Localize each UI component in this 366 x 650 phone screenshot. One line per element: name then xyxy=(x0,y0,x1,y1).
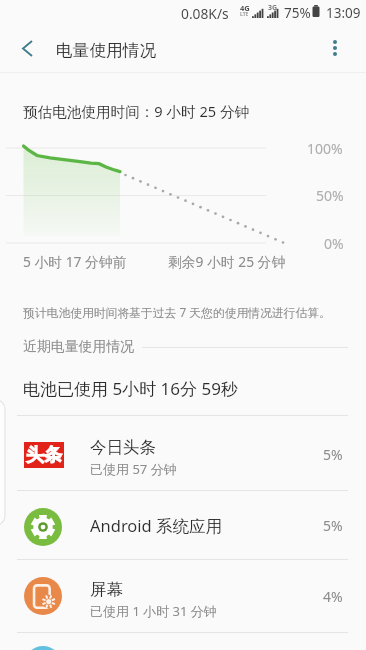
staticText: 已使用 1 小时 31 分钟 xyxy=(90,602,217,620)
staticText: 50% xyxy=(316,186,344,205)
button[interactable]: Back xyxy=(6,28,48,68)
staticText: LTE xyxy=(240,11,249,18)
button[interactable]: Android 系统应用 xyxy=(0,490,366,559)
staticText: 预估电池使用时间：9 小时 25 分钟 xyxy=(23,101,250,121)
staticText: 预计电池使用时间将基于过去 7 天您的使用情况进行估算。 xyxy=(23,304,331,320)
staticText: 13:09 xyxy=(326,4,361,22)
staticText: 75% xyxy=(284,4,311,22)
staticText: 5% xyxy=(323,445,343,464)
staticText: 已使用 57 分钟 xyxy=(90,460,177,478)
staticText: 电池已使用 5小时 16分 59秒 xyxy=(23,377,238,400)
staticText: 4% xyxy=(323,587,343,606)
staticText: 今日头条 xyxy=(90,437,156,458)
staticText: 4G xyxy=(240,3,250,13)
staticText: 5% xyxy=(323,516,343,535)
staticText: 3G xyxy=(268,3,278,13)
staticText: 0.08K/s xyxy=(181,4,229,23)
button[interactable]: More options xyxy=(316,28,354,68)
button[interactable]: 头条 xyxy=(0,416,366,490)
button[interactable]: 电池已使用 5小时 16分 59秒 xyxy=(0,361,366,415)
button[interactable]: 屏幕 xyxy=(0,559,366,632)
staticText: 头条 xyxy=(26,444,62,467)
staticText: 电量使用情况 xyxy=(56,40,157,61)
staticText: 屏幕 xyxy=(90,579,123,600)
staticText: 5 小时 17 分钟前 xyxy=(23,252,127,271)
staticText: 0% xyxy=(324,234,344,253)
staticText: Android 系统应用 xyxy=(90,514,223,537)
staticText: 近期电量使用情况 xyxy=(23,338,135,356)
staticText: 100% xyxy=(307,139,343,158)
staticText: 剩余9 小时 25 分钟 xyxy=(168,252,286,271)
